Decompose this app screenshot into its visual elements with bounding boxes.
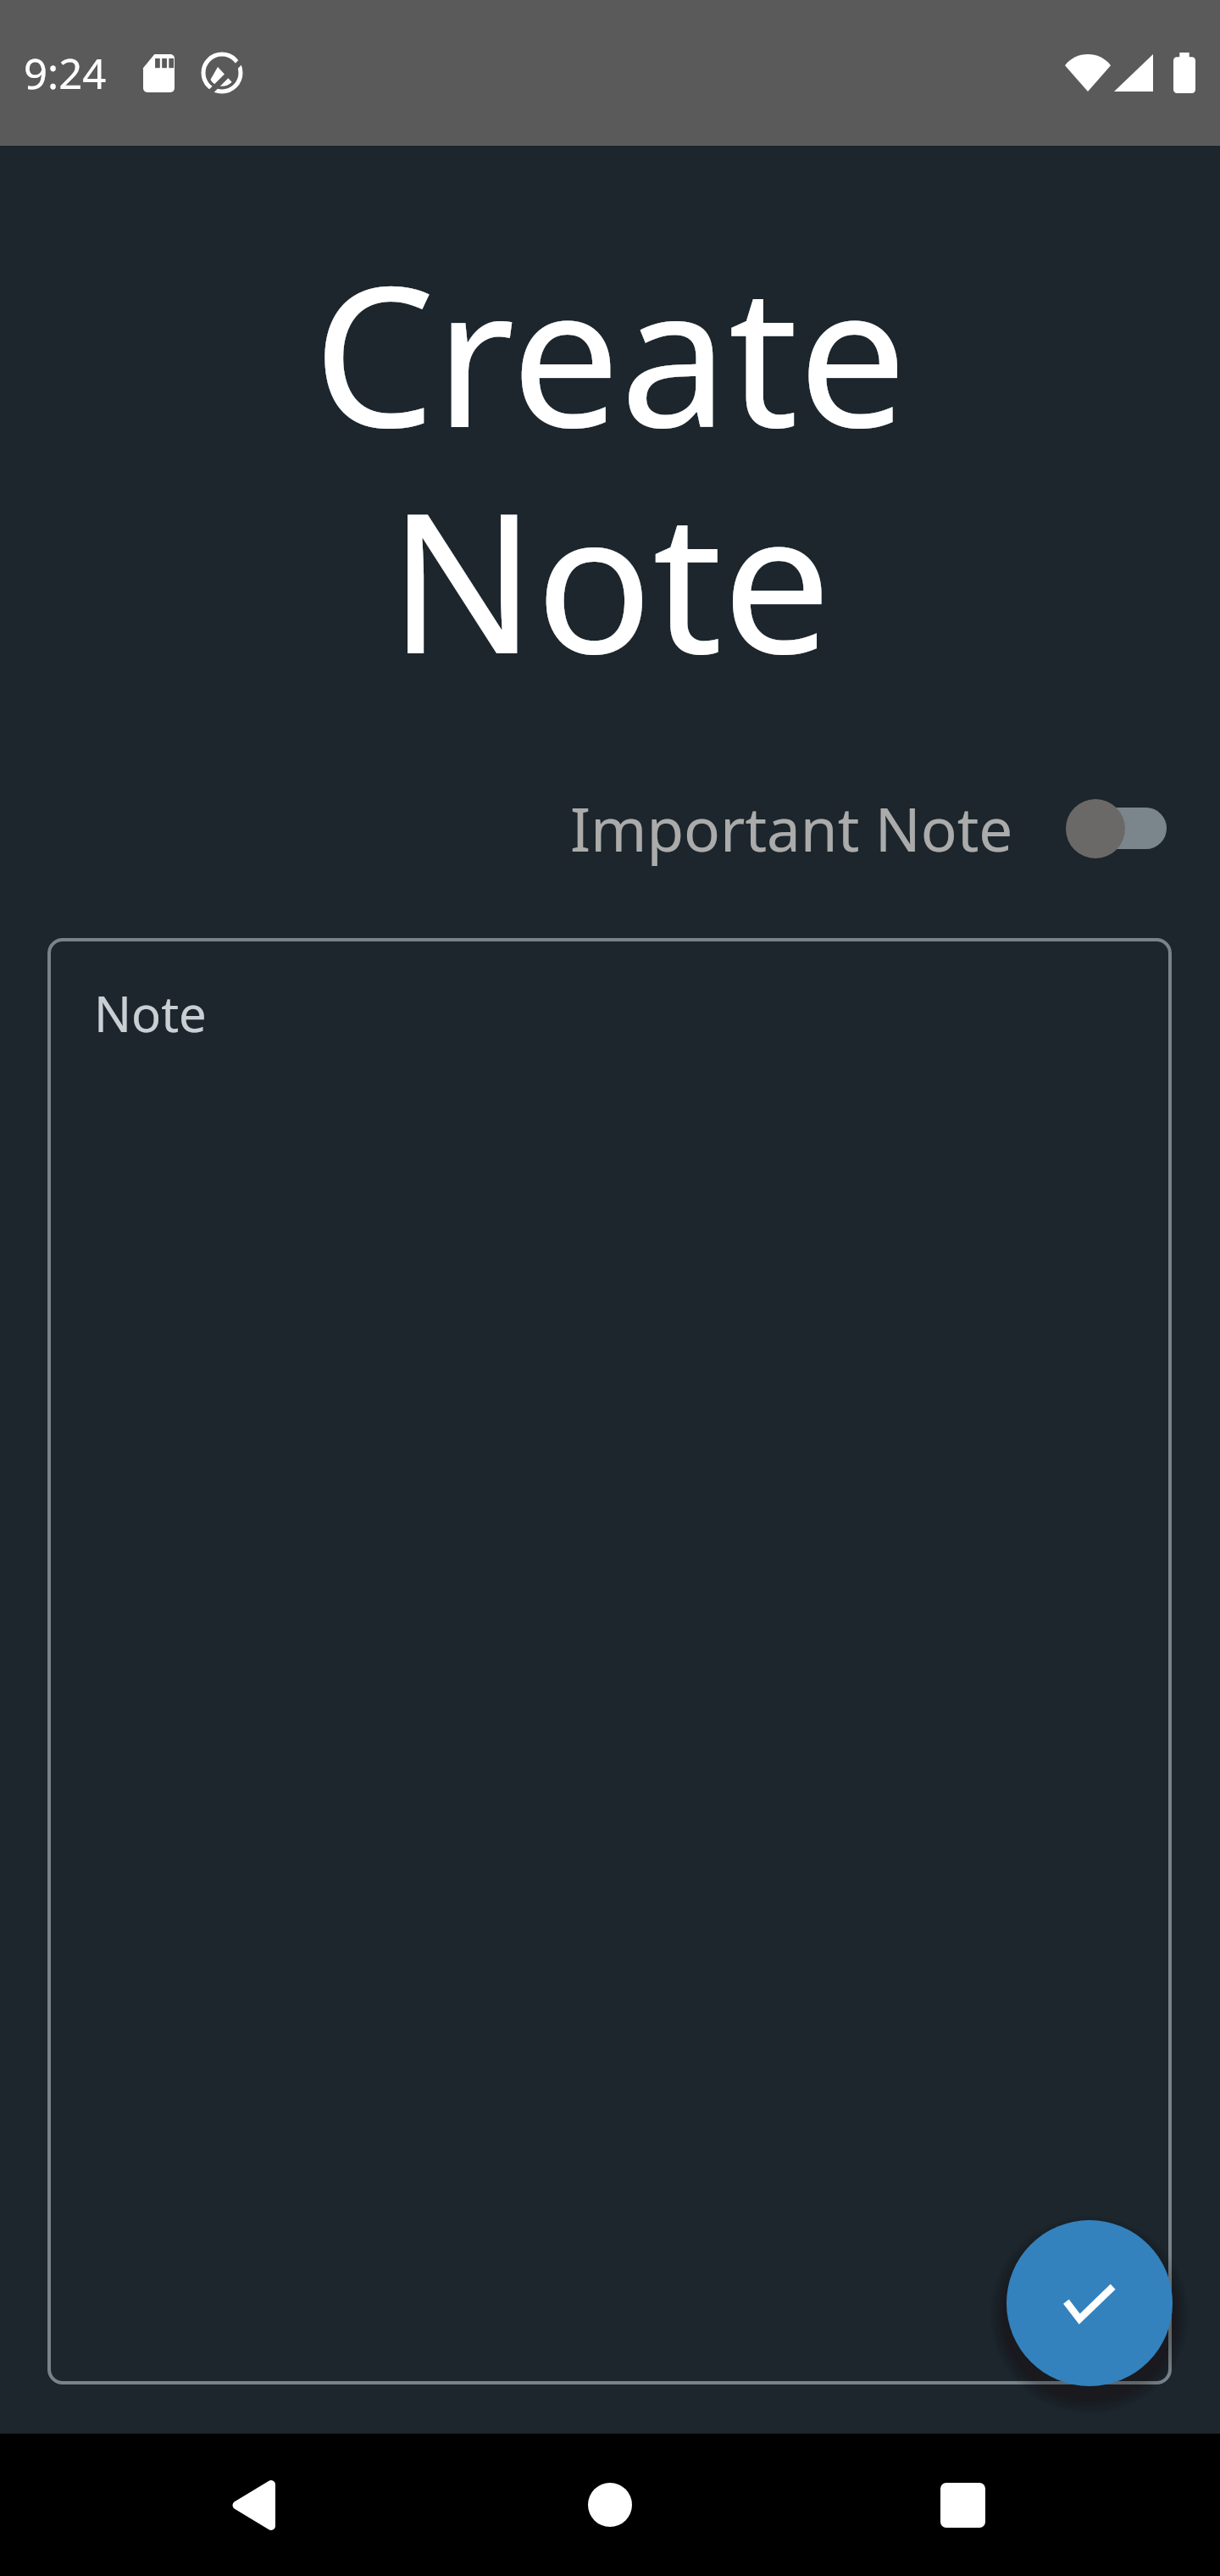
staticText: Create Note	[0, 220, 1220, 710]
staticText: 9:24	[24, 45, 107, 102]
staticText: Note	[94, 980, 207, 1046]
button[interactable]: Note	[47, 938, 1172, 2384]
staticText: Important Note	[570, 787, 1013, 869]
button[interactable]: Save note	[1006, 2220, 1173, 2386]
button[interactable]: Important Note	[570, 787, 1167, 869]
button[interactable]: Recent apps	[874, 2434, 1051, 2576]
button[interactable]: Home	[522, 2434, 698, 2576]
button[interactable]: Back	[166, 2434, 342, 2576]
button[interactable]	[1066, 798, 1167, 858]
